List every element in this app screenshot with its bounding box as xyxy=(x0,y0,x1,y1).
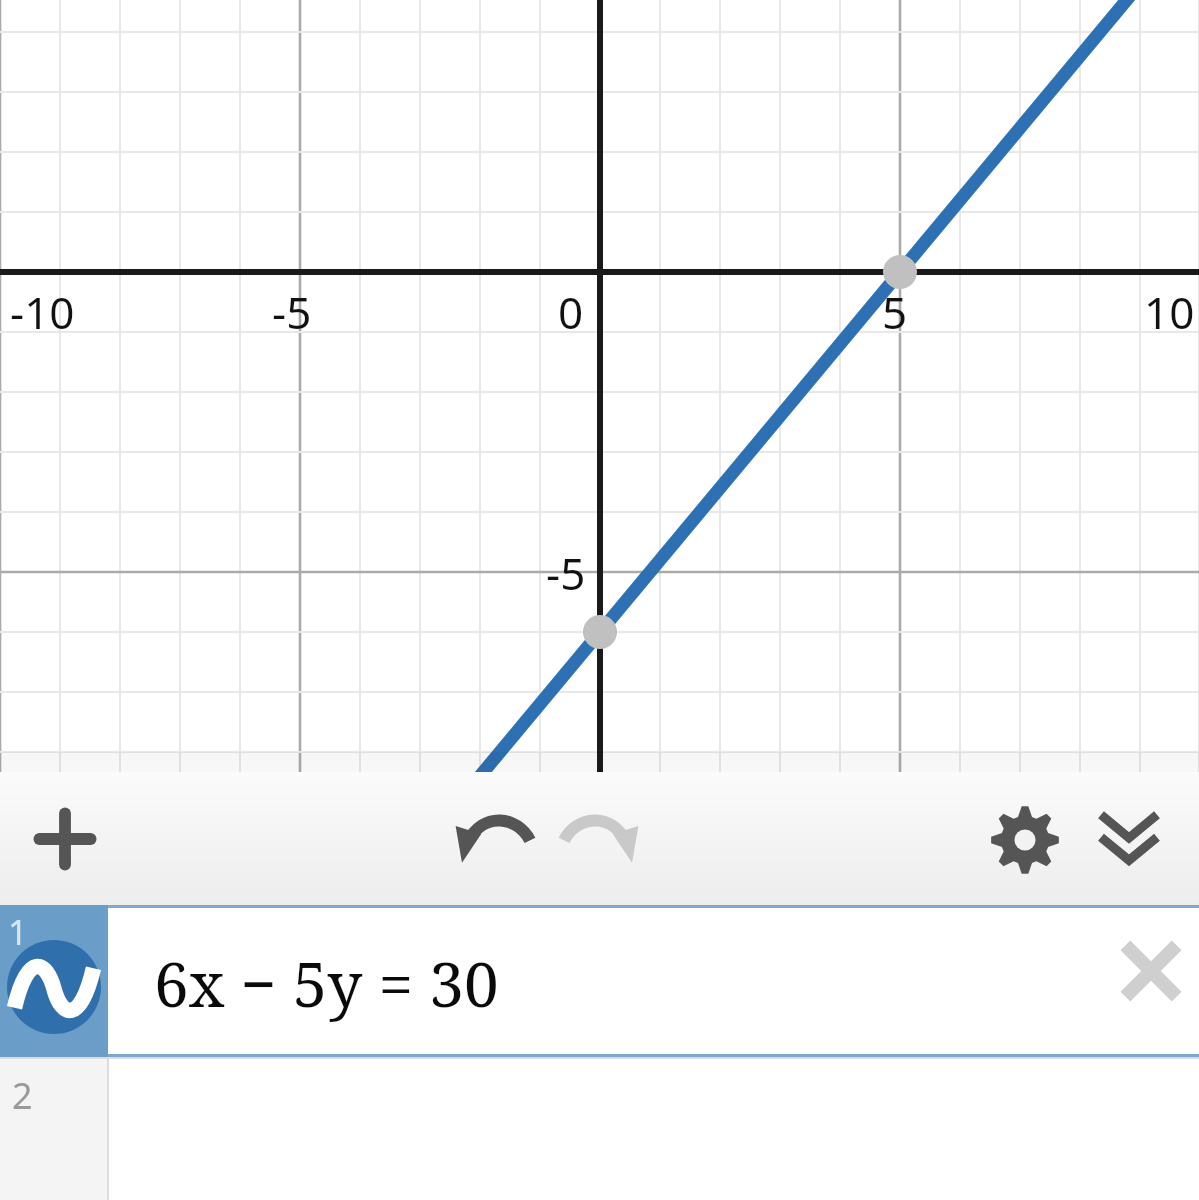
staticText: -10 xyxy=(10,282,75,342)
staticText: 5 xyxy=(882,282,908,342)
staticText: 0 xyxy=(558,282,584,342)
button[interactable]: 2 xyxy=(0,1057,1199,1200)
staticText: 2 xyxy=(12,1071,33,1120)
button[interactable]: Delete expression xyxy=(1103,923,1199,1019)
button[interactable]: 1 xyxy=(0,905,1199,1057)
button[interactable]: Settings xyxy=(977,792,1073,888)
staticText: 6x − 5y = 30 xyxy=(154,941,499,1025)
button[interactable]: Undo xyxy=(446,794,542,890)
staticText: -5 xyxy=(272,282,312,342)
staticText: 10 xyxy=(1144,282,1195,342)
button[interactable]: Add expression xyxy=(18,792,112,886)
button[interactable]: Collapse xyxy=(1081,792,1177,888)
staticText: -5 xyxy=(546,543,586,603)
button[interactable]: Redo xyxy=(552,794,648,890)
staticText: 1 xyxy=(8,909,28,955)
